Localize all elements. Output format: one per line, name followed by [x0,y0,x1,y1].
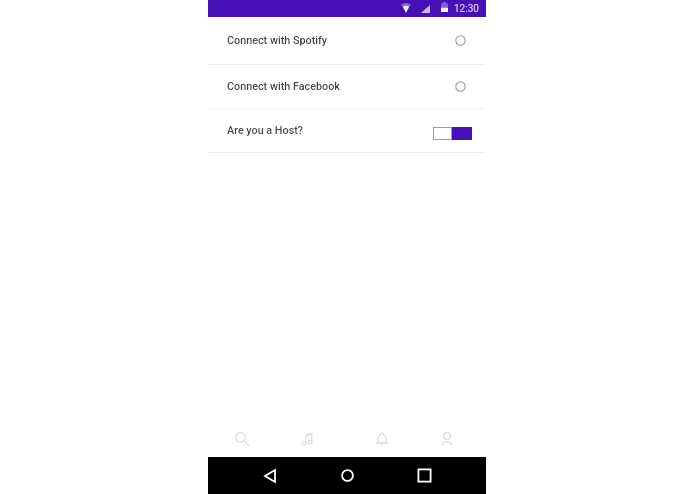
staticText: 12:30 [454,3,479,15]
button[interactable]: Host toggle [433,127,472,140]
button[interactable]: Connect with Spotify [455,35,466,46]
button[interactable]: Connect with Spotify [208,17,486,64]
button[interactable]: Back [250,457,289,494]
button[interactable]: Notifications [348,425,415,452]
button[interactable]: Connect with Facebook [208,65,486,108]
button[interactable]: Connect with Facebook [455,81,466,92]
staticText: Connect with Facebook [227,80,340,93]
button[interactable]: Search [208,425,275,452]
button[interactable]: Recents [405,457,444,494]
button[interactable]: Profile [413,425,480,452]
staticText: Are you a Host? [227,124,304,137]
button[interactable]: Music [274,425,341,452]
button[interactable]: Home [328,457,367,494]
button[interactable]: Are you a Host? [208,109,486,152]
staticText: Connect with Spotify [227,34,328,47]
